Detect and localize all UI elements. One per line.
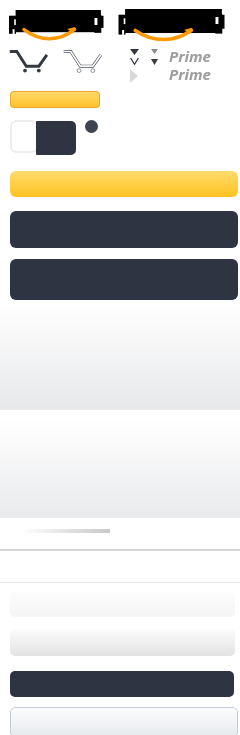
button[interactable] [10, 707, 238, 735]
staticText: Prime [169, 64, 211, 84]
button[interactable] [10, 211, 238, 248]
staticText: Prime [169, 46, 211, 66]
button[interactable] [10, 259, 238, 300]
button[interactable]: Cart [8, 44, 54, 82]
button[interactable] [10, 91, 100, 108]
button[interactable]: Cart outline [62, 44, 108, 82]
button[interactable] [10, 671, 234, 697]
button[interactable]: Amazon [0, 0, 114, 44]
button[interactable] [10, 171, 238, 197]
button[interactable] [36, 121, 76, 155]
button[interactable] [10, 120, 38, 153]
button[interactable] [10, 629, 235, 656]
button[interactable] [85, 120, 98, 133]
button[interactable]: Amazon [114, 0, 240, 44]
